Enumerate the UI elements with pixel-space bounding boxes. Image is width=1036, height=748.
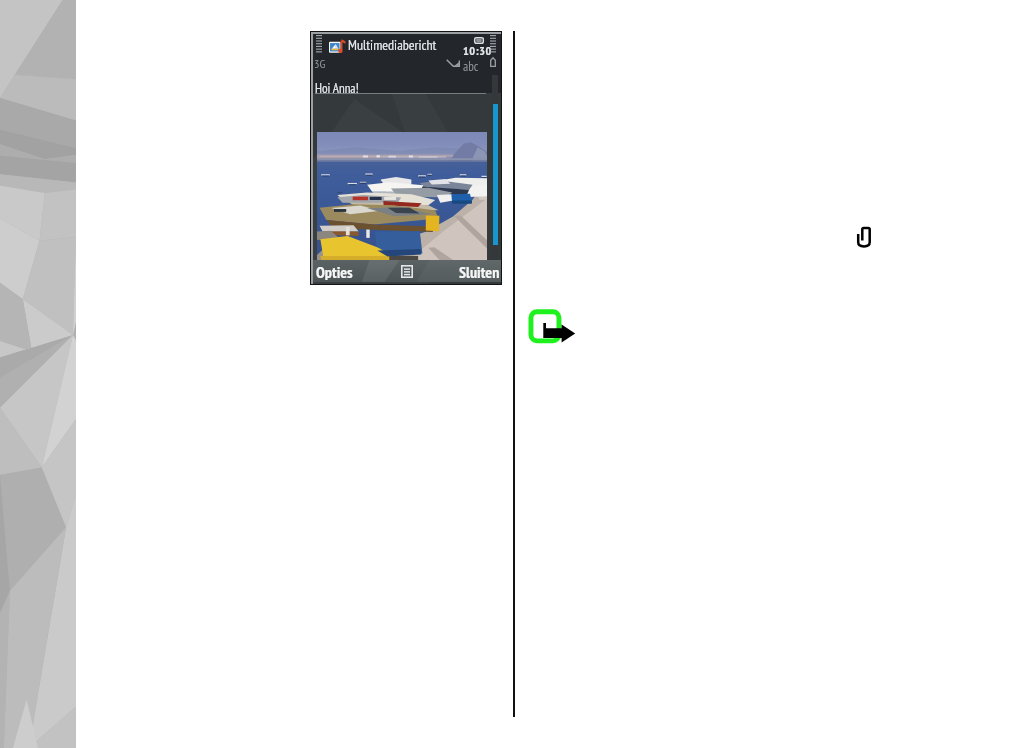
staticText: 3G bbox=[314, 56, 326, 72]
staticText: Multimediabericht bbox=[348, 36, 437, 54]
button[interactable]: Sluiten bbox=[453, 260, 501, 282]
staticText: 10:30 bbox=[463, 43, 492, 59]
button[interactable]: Send message bbox=[526, 306, 578, 346]
button[interactable]: Menu bbox=[401, 265, 413, 278]
staticText: Hoi Anna! bbox=[315, 80, 359, 97]
staticText: abc bbox=[463, 58, 479, 75]
button[interactable]: Opties bbox=[313, 260, 359, 282]
button[interactable]: Attachment bbox=[855, 225, 873, 250]
